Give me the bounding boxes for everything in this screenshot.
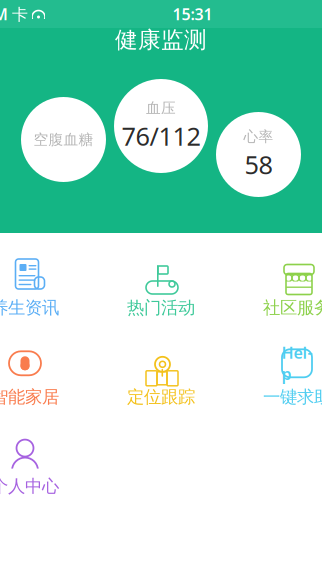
button[interactable]: 养生资讯 (0, 247, 93, 328)
staticText: Help (281, 342, 312, 384)
staticText: 养生资讯 (0, 297, 59, 318)
staticText: 智能家居 (0, 386, 59, 408)
button[interactable]: 健康监测 (0, 24, 322, 56)
button[interactable]: 心率 (216, 112, 301, 197)
staticText: 健康监测 (115, 26, 207, 54)
button[interactable]: 定位跟踪 (93, 336, 229, 418)
staticText: 58 (244, 148, 272, 181)
staticText: 空腹血糖 (33, 130, 93, 148)
staticText: 76/112 (121, 119, 200, 153)
button[interactable]: 社区服务 (229, 247, 322, 328)
button[interactable]: 血压 (114, 79, 208, 173)
staticText: 一键求助 (263, 386, 322, 408)
staticText: 无 SIM 卡 (0, 3, 28, 25)
button[interactable]: Help (229, 336, 322, 418)
staticText: 个人中心 (0, 476, 59, 497)
staticText: 心率 (243, 128, 273, 146)
button[interactable]: 智能家居 (0, 336, 93, 418)
button[interactable]: 热门活动 (93, 247, 229, 328)
staticText: 定位跟踪 (127, 386, 195, 408)
staticText: 15:31 (172, 3, 212, 25)
staticText: 社区服务 (263, 297, 322, 318)
staticText: 热门活动 (127, 297, 195, 318)
button[interactable]: 空腹血糖 (21, 97, 106, 182)
staticText: 血压 (146, 99, 176, 117)
button[interactable]: 个人中心 (0, 426, 93, 507)
